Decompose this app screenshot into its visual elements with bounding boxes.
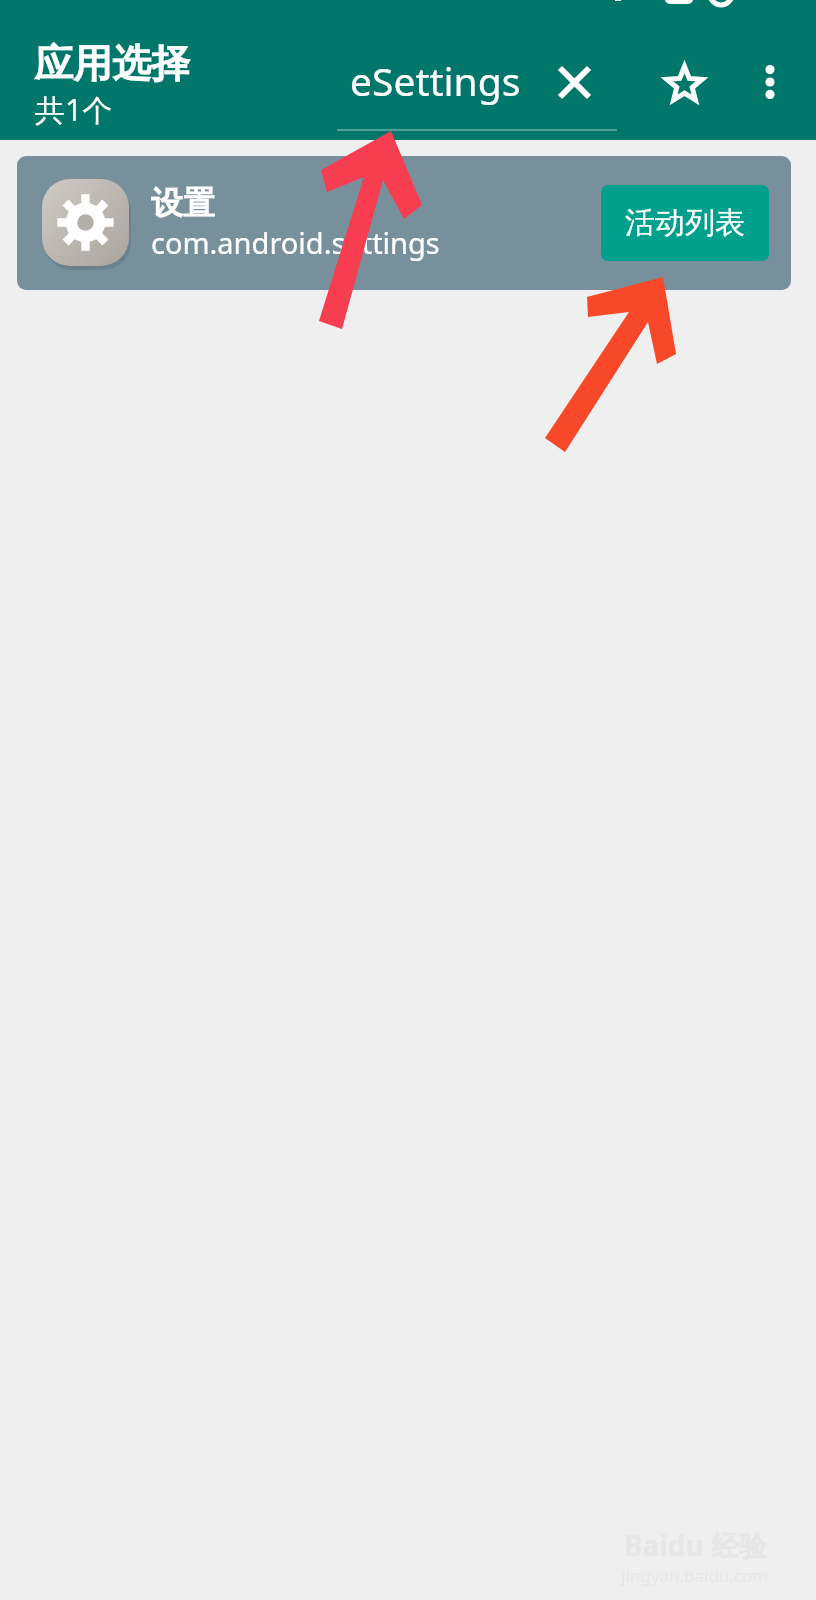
button[interactable]: eSettings	[337, 54, 617, 110]
staticText: 应用选择	[34, 39, 190, 88]
staticText: eSettings	[350, 54, 521, 107]
staticText: 共1个	[35, 89, 113, 130]
button[interactable]: 设置	[17, 156, 791, 290]
button[interactable]: More options	[742, 54, 798, 110]
staticText: 设置	[151, 183, 215, 223]
button[interactable]: Favorite	[656, 55, 712, 111]
staticText: com.android.settings	[151, 223, 440, 262]
button[interactable]: Clear search	[546, 54, 602, 110]
staticText: Baidu 经验	[624, 1526, 767, 1564]
button[interactable]: 活动列表	[601, 185, 769, 261]
staticText: 活动列表	[625, 204, 745, 242]
